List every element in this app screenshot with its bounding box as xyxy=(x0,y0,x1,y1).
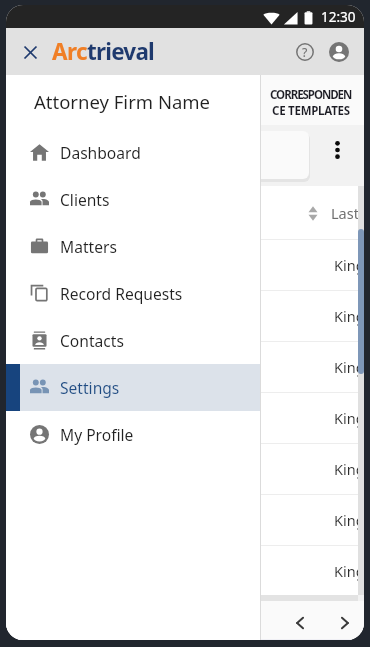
button[interactable]: Kingston xyxy=(6,495,364,545)
staticText: Kingston xyxy=(334,357,364,377)
button[interactable]: Previous page xyxy=(285,608,315,638)
button[interactable]: Settings xyxy=(6,364,261,411)
button[interactable]: Record Requests xyxy=(6,270,261,317)
button[interactable]: Kingston xyxy=(6,444,364,494)
button[interactable]: Contacts xyxy=(6,317,261,364)
staticText: Kingston xyxy=(334,255,364,275)
staticText: Kingston xyxy=(334,561,364,581)
staticText: ? xyxy=(302,44,308,60)
button[interactable]: Dashboard xyxy=(6,129,261,176)
button[interactable]: Kingston xyxy=(6,342,364,392)
staticText: CE TEMPLATES xyxy=(272,103,350,119)
staticText: Record Requests xyxy=(60,283,183,304)
button[interactable]: Next page xyxy=(330,608,360,638)
staticText: Contacts xyxy=(60,330,124,351)
button[interactable]: Clients xyxy=(6,176,261,223)
staticText: Kingston xyxy=(334,459,364,479)
button[interactable]: Kingston xyxy=(6,240,364,290)
staticText: Kingston xyxy=(334,408,364,428)
staticText: Kingston xyxy=(334,306,364,326)
staticText: Clients xyxy=(60,189,110,210)
button[interactable]: More options xyxy=(323,136,351,164)
staticText: Arc xyxy=(52,36,87,67)
button[interactable]: Close navigation drawer xyxy=(16,38,44,66)
staticText: trieval xyxy=(87,36,154,67)
staticText: CORRESPONDEN xyxy=(270,87,352,103)
button[interactable]: Help xyxy=(289,36,321,68)
staticText: My Profile xyxy=(60,424,134,445)
button[interactable]: Account xyxy=(323,36,355,68)
button[interactable] xyxy=(219,131,309,179)
staticText: Kingston xyxy=(334,510,364,530)
staticText: Settings xyxy=(60,377,120,398)
staticText: Attorney Firm Name xyxy=(34,89,211,114)
staticText: Last Updated xyxy=(331,203,364,223)
staticText: 12:30 xyxy=(321,8,356,26)
button[interactable]: My Profile xyxy=(6,411,261,458)
button[interactable]: Kingston xyxy=(6,546,364,595)
staticText: Matters xyxy=(60,236,117,257)
button[interactable]: Kingston xyxy=(6,393,364,443)
button[interactable]: Kingston xyxy=(6,291,364,341)
button[interactable]: Matters xyxy=(6,223,261,270)
staticText: Dashboard xyxy=(60,142,141,163)
